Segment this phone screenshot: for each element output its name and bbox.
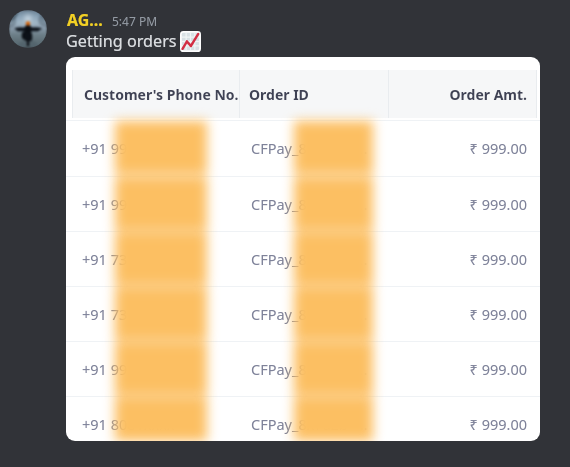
- button[interactable]: Customer's Phone No.: [66, 57, 540, 441]
- staticText: Getting orders: [66, 30, 177, 52]
- staticText: +91 8081xxxx: [82, 414, 239, 434]
- staticText: ₹ 999.00: [372, 249, 527, 269]
- staticText: …: [356, 249, 368, 269]
- staticText: CFPay_8x7a2b: [251, 249, 349, 269]
- button[interactable]: User avatar: [9, 10, 47, 48]
- staticText: Order Amt.: [370, 85, 527, 104]
- staticText: CFPay_8x7a2b: [251, 414, 349, 434]
- staticText: +91 9923xxxx: [82, 359, 239, 379]
- staticText: CFPay_8x7a2b: [251, 194, 349, 214]
- staticText: …: [356, 194, 368, 214]
- staticText: CFPay_8x7a2b: [251, 359, 349, 379]
- staticText: …: [356, 359, 368, 379]
- staticText: Order ID: [249, 85, 398, 104]
- staticText: +91 9935xxxx: [82, 138, 239, 158]
- staticText: …: [356, 304, 368, 324]
- staticText: ₹ 999.00: [372, 359, 527, 379]
- staticText: 5:47 PM: [112, 13, 158, 29]
- staticText: +91 7332xxxx: [82, 304, 239, 324]
- staticText: +91 7335xxxx: [82, 249, 239, 269]
- staticText: +91 9936xxxx: [82, 194, 239, 214]
- staticText: …: [356, 138, 368, 158]
- staticText: …: [356, 414, 368, 434]
- staticText: CFPay_8x7a2b: [251, 304, 349, 324]
- staticText: ₹ 999.00: [372, 194, 527, 214]
- staticText: Customer's Phone No.: [84, 85, 239, 104]
- staticText: ₹ 999.00: [372, 138, 527, 158]
- staticText: AG...: [67, 9, 103, 31]
- staticText: CFPay_8x7a2b: [251, 138, 349, 158]
- staticText: ₹ 999.00: [372, 304, 527, 324]
- staticText: ₹ 999.00: [372, 414, 527, 434]
